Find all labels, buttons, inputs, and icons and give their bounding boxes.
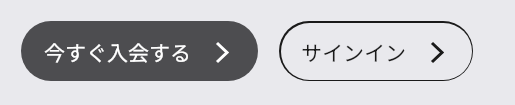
- staticText: サインイン: [301, 37, 406, 67]
- button[interactable]: サインイン: [279, 21, 473, 81]
- staticText: 今すぐ入会する: [44, 37, 191, 67]
- button[interactable]: 今すぐ入会する: [21, 21, 258, 81]
